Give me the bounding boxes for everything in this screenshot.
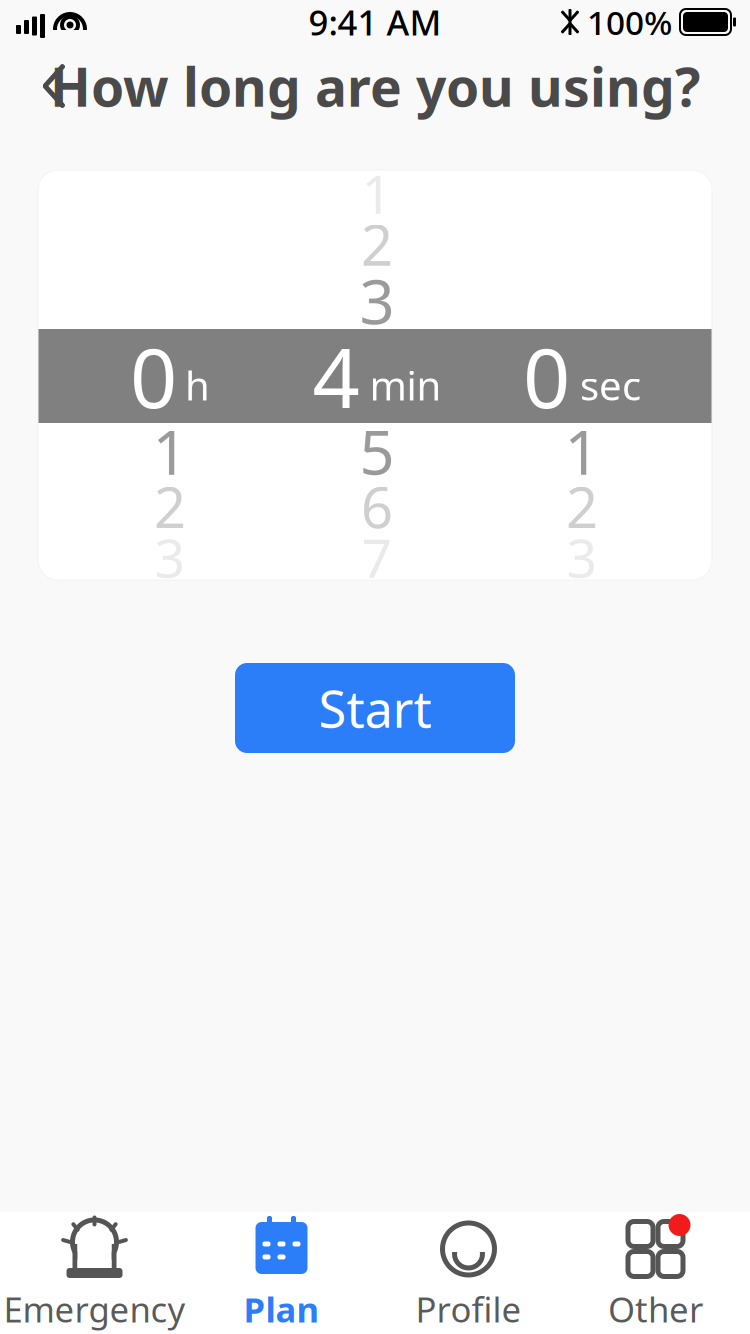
staticText: 3	[566, 522, 597, 592]
staticText: 7	[361, 522, 392, 592]
button[interactable]: Profile	[375, 1213, 562, 1333]
staticText: 2	[361, 207, 393, 281]
staticText: 100%	[587, 0, 672, 44]
staticText: 3	[359, 260, 394, 341]
staticText: h	[185, 358, 210, 411]
staticText: sec	[580, 358, 641, 411]
staticText: 3	[154, 522, 185, 592]
staticText: Emergency	[3, 1286, 185, 1332]
staticText: 2	[154, 469, 186, 544]
staticText: Profile	[415, 1286, 521, 1332]
staticText: 2	[566, 469, 598, 544]
staticText: 1	[361, 158, 392, 228]
button[interactable]: Other	[562, 1213, 749, 1333]
staticText: 9:41 AM	[308, 0, 441, 45]
button[interactable]: Back	[18, 50, 90, 122]
staticText: 6	[361, 469, 393, 544]
button[interactable]: Plan	[188, 1213, 375, 1333]
button[interactable]: Emergency	[1, 1213, 188, 1333]
staticText: 0	[523, 321, 570, 431]
staticText: Other	[608, 1286, 703, 1332]
staticText: 1	[564, 410, 599, 492]
button[interactable]: Start	[235, 663, 515, 753]
staticText: 1	[152, 410, 187, 492]
staticText: min	[369, 358, 441, 411]
staticText: 0	[130, 321, 177, 431]
staticText: How long are you using?	[50, 51, 700, 121]
staticText: Plan	[243, 1286, 319, 1332]
staticText: 5	[359, 410, 394, 492]
staticText: Start	[318, 674, 431, 742]
staticText: 4	[312, 321, 359, 431]
